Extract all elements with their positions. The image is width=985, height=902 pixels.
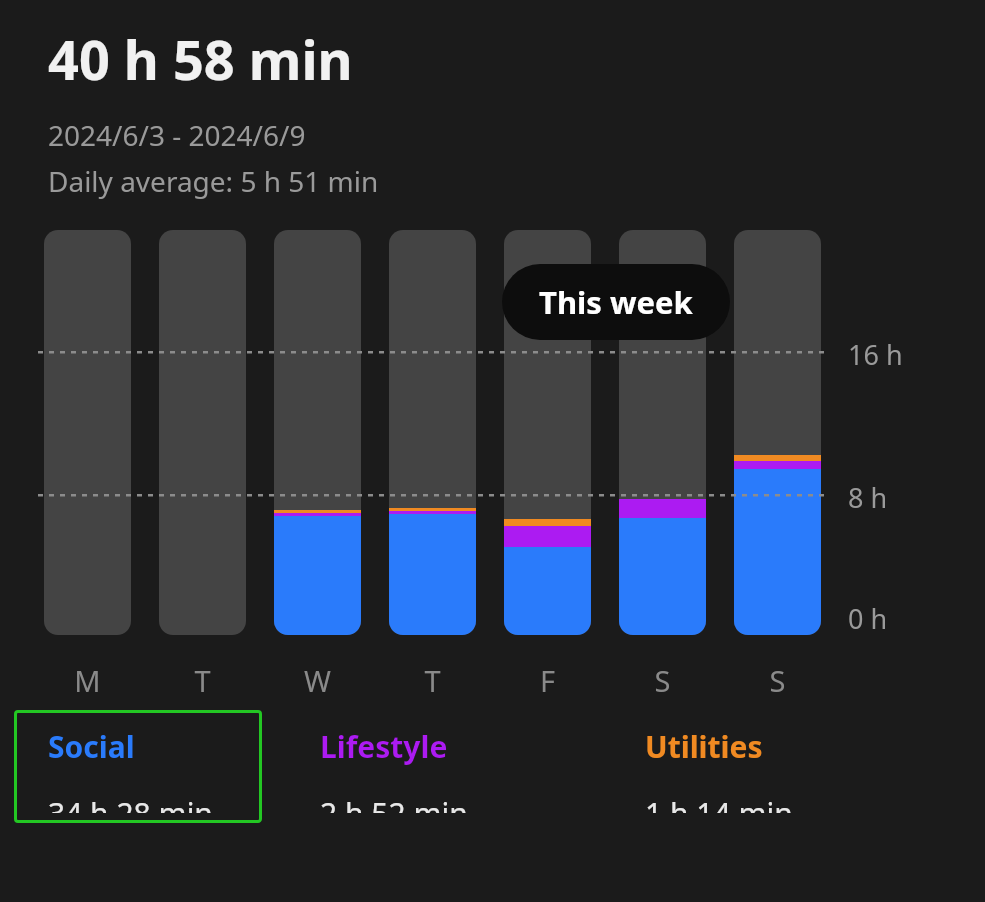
staticText: S: [619, 661, 706, 700]
staticText: 1 h 14 min: [645, 793, 793, 813]
staticText: 2 h 52 min: [320, 793, 468, 813]
staticText: Lifestyle: [320, 726, 448, 767]
staticText: 8 h: [848, 479, 888, 516]
staticText: F: [504, 661, 591, 700]
staticText: Utilities: [645, 726, 763, 767]
staticText: 0 h: [848, 600, 888, 637]
button[interactable]: Utilities: [611, 710, 887, 823]
button[interactable]: Social: [14, 710, 262, 823]
staticText: 40 h 58 min: [48, 22, 353, 96]
button[interactable]: Lifestyle: [286, 710, 587, 823]
staticText: T: [389, 661, 476, 700]
staticText: T: [159, 661, 246, 700]
staticText: 34 h 28 min: [48, 793, 213, 813]
staticText: M: [44, 661, 131, 700]
staticText: 16 h: [848, 336, 903, 373]
staticText: This week: [539, 281, 693, 323]
button[interactable]: This week: [502, 264, 730, 340]
staticText: W: [274, 661, 361, 700]
staticText: Daily average: 5 h 51 min: [48, 162, 379, 200]
staticText: Social: [48, 726, 135, 767]
staticText: S: [734, 661, 821, 700]
staticText: 2024/6/3 - 2024/6/9: [48, 116, 306, 154]
